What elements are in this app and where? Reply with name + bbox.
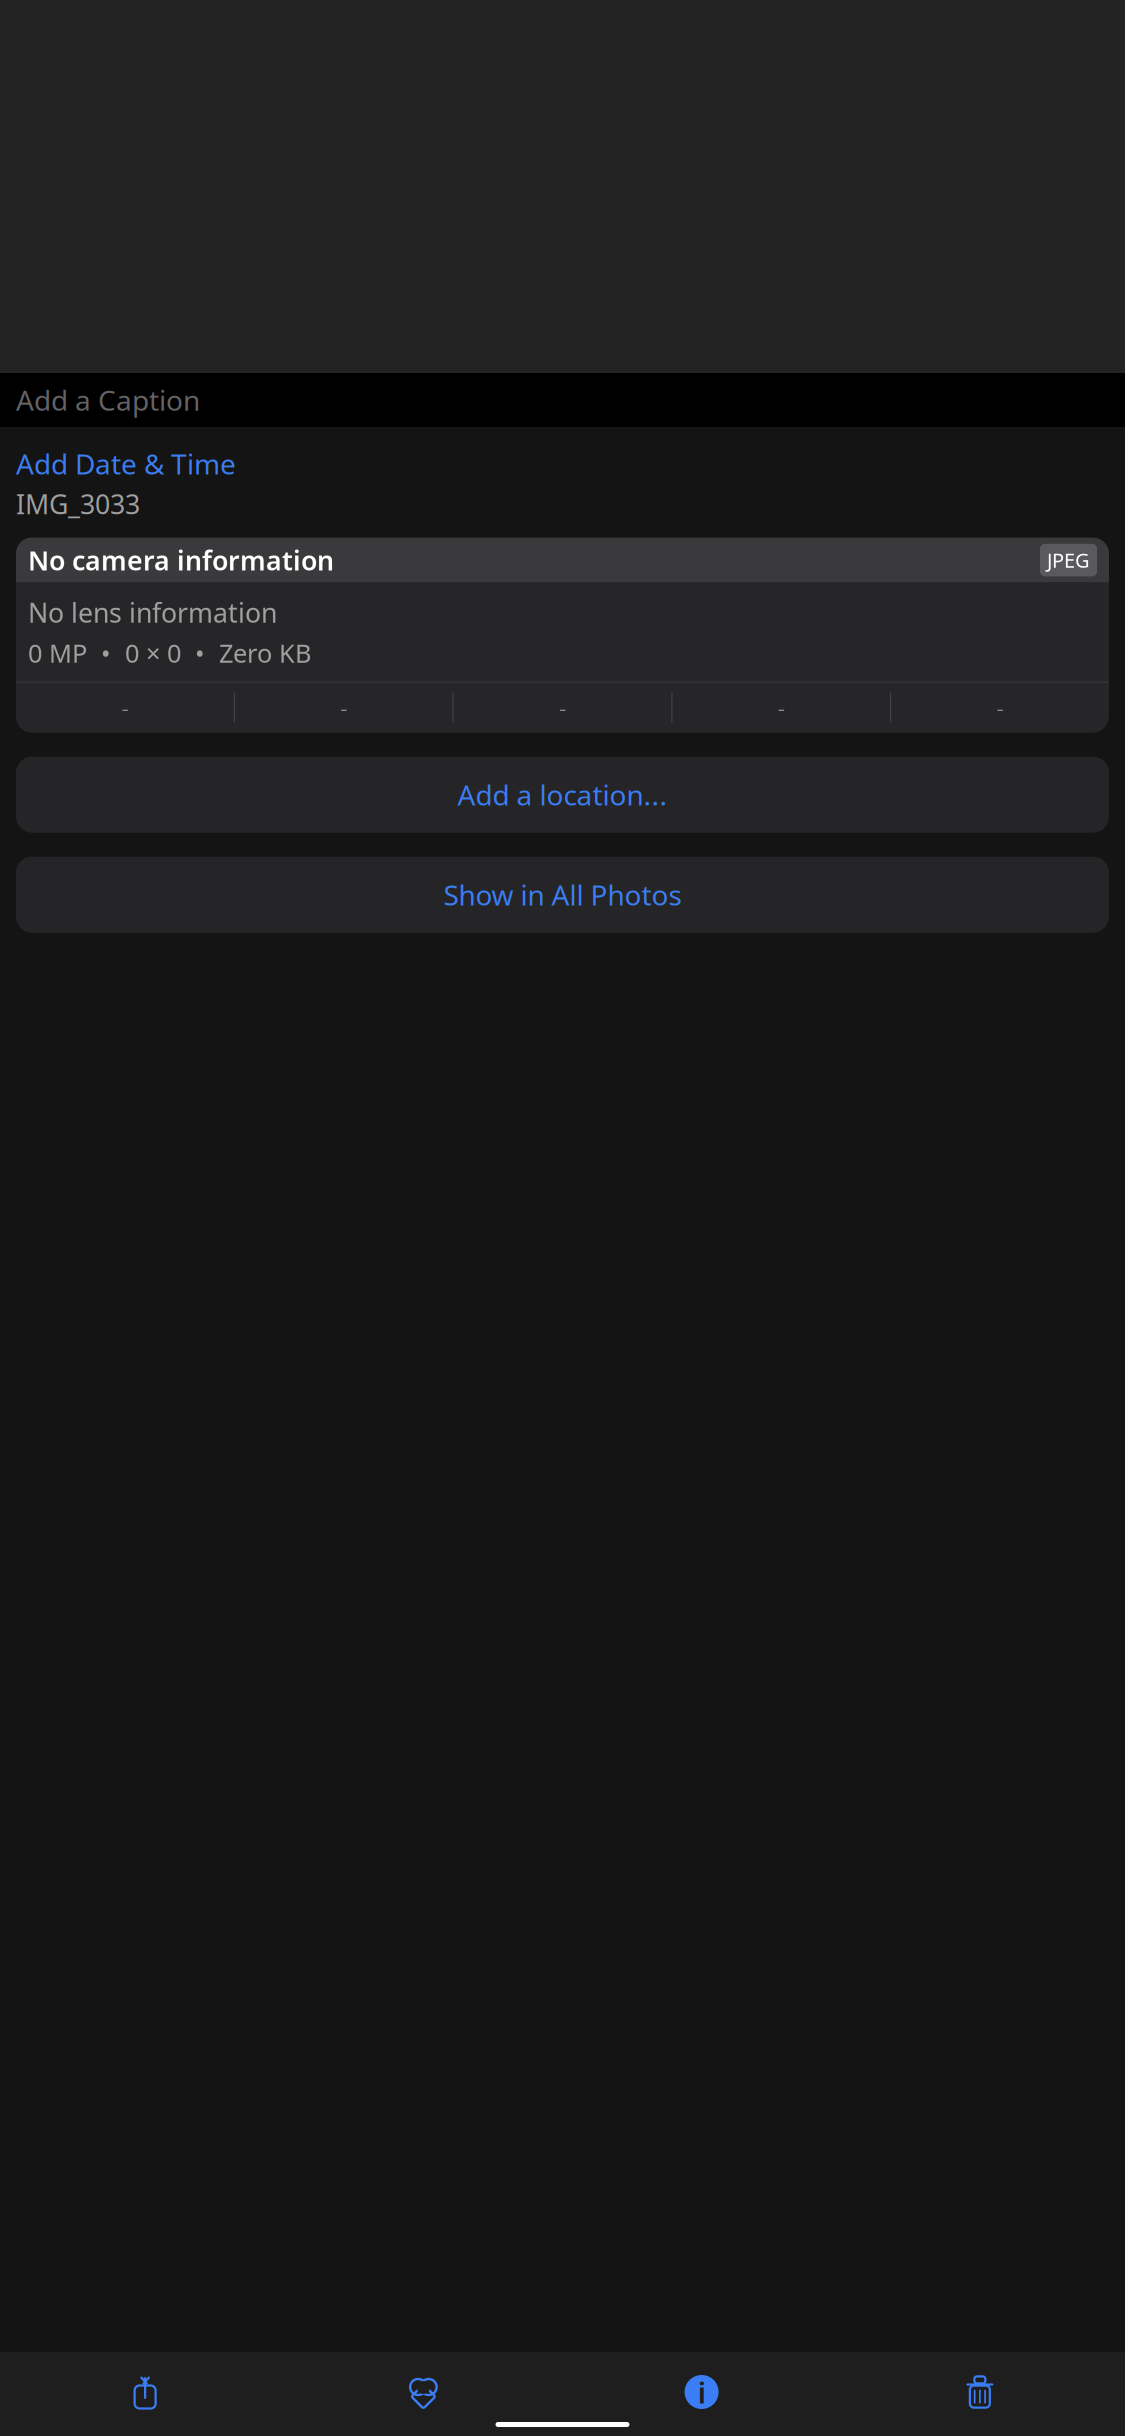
button[interactable]: Favorite	[284, 2364, 562, 2420]
staticText: IMG_3033	[16, 486, 140, 522]
staticText: -	[778, 693, 785, 723]
staticText: Add a Caption	[16, 381, 200, 419]
button[interactable]: Add a location...	[16, 757, 1109, 833]
staticText: i	[698, 2372, 706, 2411]
button[interactable]: Info	[562, 2364, 841, 2420]
staticText: -	[340, 693, 347, 723]
staticText: -	[997, 693, 1004, 723]
staticText: Show in All Photos	[443, 876, 681, 913]
staticText: Add Date & Time	[16, 445, 236, 482]
staticText: No camera information	[28, 542, 334, 578]
button[interactable]: Add Date & Time	[0, 427, 1125, 486]
staticText: No lens information	[28, 595, 277, 630]
staticText: JPEG	[1047, 547, 1090, 573]
button[interactable]: Show in All Photos	[16, 857, 1109, 933]
staticText: -	[121, 693, 128, 723]
button[interactable]: Delete	[841, 2364, 1119, 2420]
staticText: -	[559, 693, 566, 723]
button[interactable]: Share	[6, 2364, 284, 2420]
staticText: 0 MP • 0 × 0 • Zero KB	[28, 636, 311, 670]
staticText: Add a location...	[457, 776, 667, 813]
